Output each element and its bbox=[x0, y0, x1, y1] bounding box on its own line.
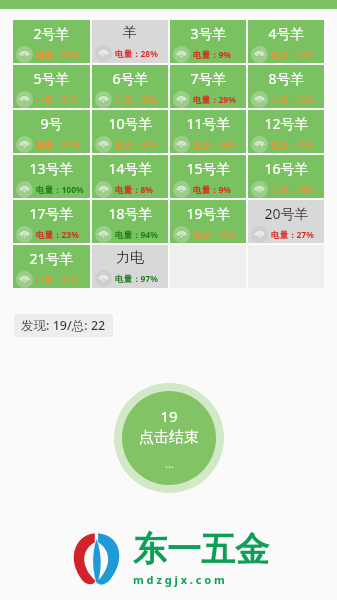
button[interactable]: 13号羊 bbox=[13, 155, 90, 198]
staticText: 力电 bbox=[116, 249, 144, 267]
button[interactable]: 6号羊 bbox=[92, 65, 168, 108]
staticText: 电量：30% bbox=[193, 229, 236, 241]
staticText: 电量：33% bbox=[271, 49, 314, 61]
button[interactable]: 19号羊 bbox=[170, 200, 246, 243]
staticText: 5号羊 bbox=[33, 69, 70, 88]
button[interactable]: 力电 bbox=[92, 245, 168, 288]
staticText: 17号羊 bbox=[29, 204, 74, 223]
staticText: 8号羊 bbox=[268, 69, 305, 88]
staticText: 10号羊 bbox=[108, 114, 153, 133]
button[interactable]: 8号羊 bbox=[248, 65, 324, 108]
staticText: 电量：9% bbox=[193, 184, 232, 196]
staticText: 4号羊 bbox=[268, 24, 305, 43]
staticText: 电量：28% bbox=[115, 48, 158, 60]
staticText: 电量：31% bbox=[36, 274, 79, 286]
staticText: 电量：100% bbox=[36, 184, 84, 196]
button[interactable]: 17号羊 bbox=[13, 200, 90, 243]
staticText: 电量：23% bbox=[36, 229, 79, 241]
staticText: 电量：31% bbox=[271, 94, 314, 106]
button[interactable]: 7号羊 bbox=[170, 65, 246, 108]
staticText: ... bbox=[165, 456, 174, 471]
staticText: 20号羊 bbox=[264, 204, 309, 223]
staticText: 12号羊 bbox=[264, 114, 309, 133]
button[interactable]: 21号羊 bbox=[13, 245, 90, 288]
button[interactable]: 2号羊 bbox=[13, 20, 90, 63]
staticText: 9号 bbox=[40, 114, 63, 133]
button[interactable]: 18号羊 bbox=[92, 200, 168, 243]
staticText: 电量：33% bbox=[115, 94, 158, 106]
staticText: 电量：94% bbox=[115, 229, 158, 241]
staticText: 电量：34% bbox=[271, 184, 314, 196]
staticText: 2号羊 bbox=[33, 24, 70, 43]
button[interactable]: 10号羊 bbox=[92, 110, 168, 153]
staticText: 电量：34% bbox=[36, 94, 79, 106]
button[interactable]: 16号羊 bbox=[248, 155, 324, 198]
staticText: 羊 bbox=[123, 24, 137, 42]
staticText: 15号羊 bbox=[186, 159, 231, 178]
staticText: 13号羊 bbox=[29, 159, 74, 178]
button[interactable]: 5号羊 bbox=[13, 65, 90, 108]
staticText: 18号羊 bbox=[108, 204, 153, 223]
staticText: 电量：9% bbox=[193, 49, 232, 61]
staticText: 21号羊 bbox=[29, 249, 74, 268]
button[interactable]: 11号羊 bbox=[170, 110, 246, 153]
button[interactable]: 4号羊 bbox=[248, 20, 324, 63]
staticText: 东一五金 bbox=[133, 528, 269, 571]
staticText: 电量：31% bbox=[36, 139, 79, 151]
staticText: 电量：30% bbox=[115, 139, 158, 151]
staticText: 电量：34% bbox=[193, 139, 236, 151]
staticText: 电量：8% bbox=[115, 184, 154, 196]
staticText: 电量：27% bbox=[271, 229, 314, 241]
staticText: 电量：97% bbox=[115, 273, 158, 285]
button[interactable]: 15号羊 bbox=[170, 155, 246, 198]
staticText: 19 bbox=[160, 406, 178, 426]
button[interactable]: 9号 bbox=[13, 110, 90, 153]
staticText: 16号羊 bbox=[264, 159, 309, 178]
button[interactable]: 12号羊 bbox=[248, 110, 324, 153]
staticText: 19号羊 bbox=[186, 204, 231, 223]
button[interactable]: 羊 bbox=[92, 20, 168, 63]
staticText: 点击结束 bbox=[139, 428, 199, 447]
staticText: 7号羊 bbox=[190, 69, 227, 88]
button[interactable]: 14号羊 bbox=[92, 155, 168, 198]
staticText: 电量：29% bbox=[193, 94, 236, 106]
button[interactable]: 20号羊 bbox=[248, 200, 324, 243]
staticText: 11号羊 bbox=[186, 114, 231, 133]
staticText: 3号羊 bbox=[190, 24, 227, 43]
staticText: 发现: 19/总: 22 bbox=[21, 317, 106, 334]
staticText: m d z g j x . c o m bbox=[133, 572, 225, 587]
staticText: 电量：33% bbox=[36, 49, 79, 61]
staticText: 14号羊 bbox=[108, 159, 153, 178]
staticText: 电量：35% bbox=[271, 139, 314, 151]
staticText: 6号羊 bbox=[112, 69, 149, 88]
button[interactable]: 发现: 19/总: 22 bbox=[14, 314, 113, 337]
button[interactable]: 3号羊 bbox=[170, 20, 246, 63]
button[interactable]: 19 bbox=[114, 383, 224, 493]
